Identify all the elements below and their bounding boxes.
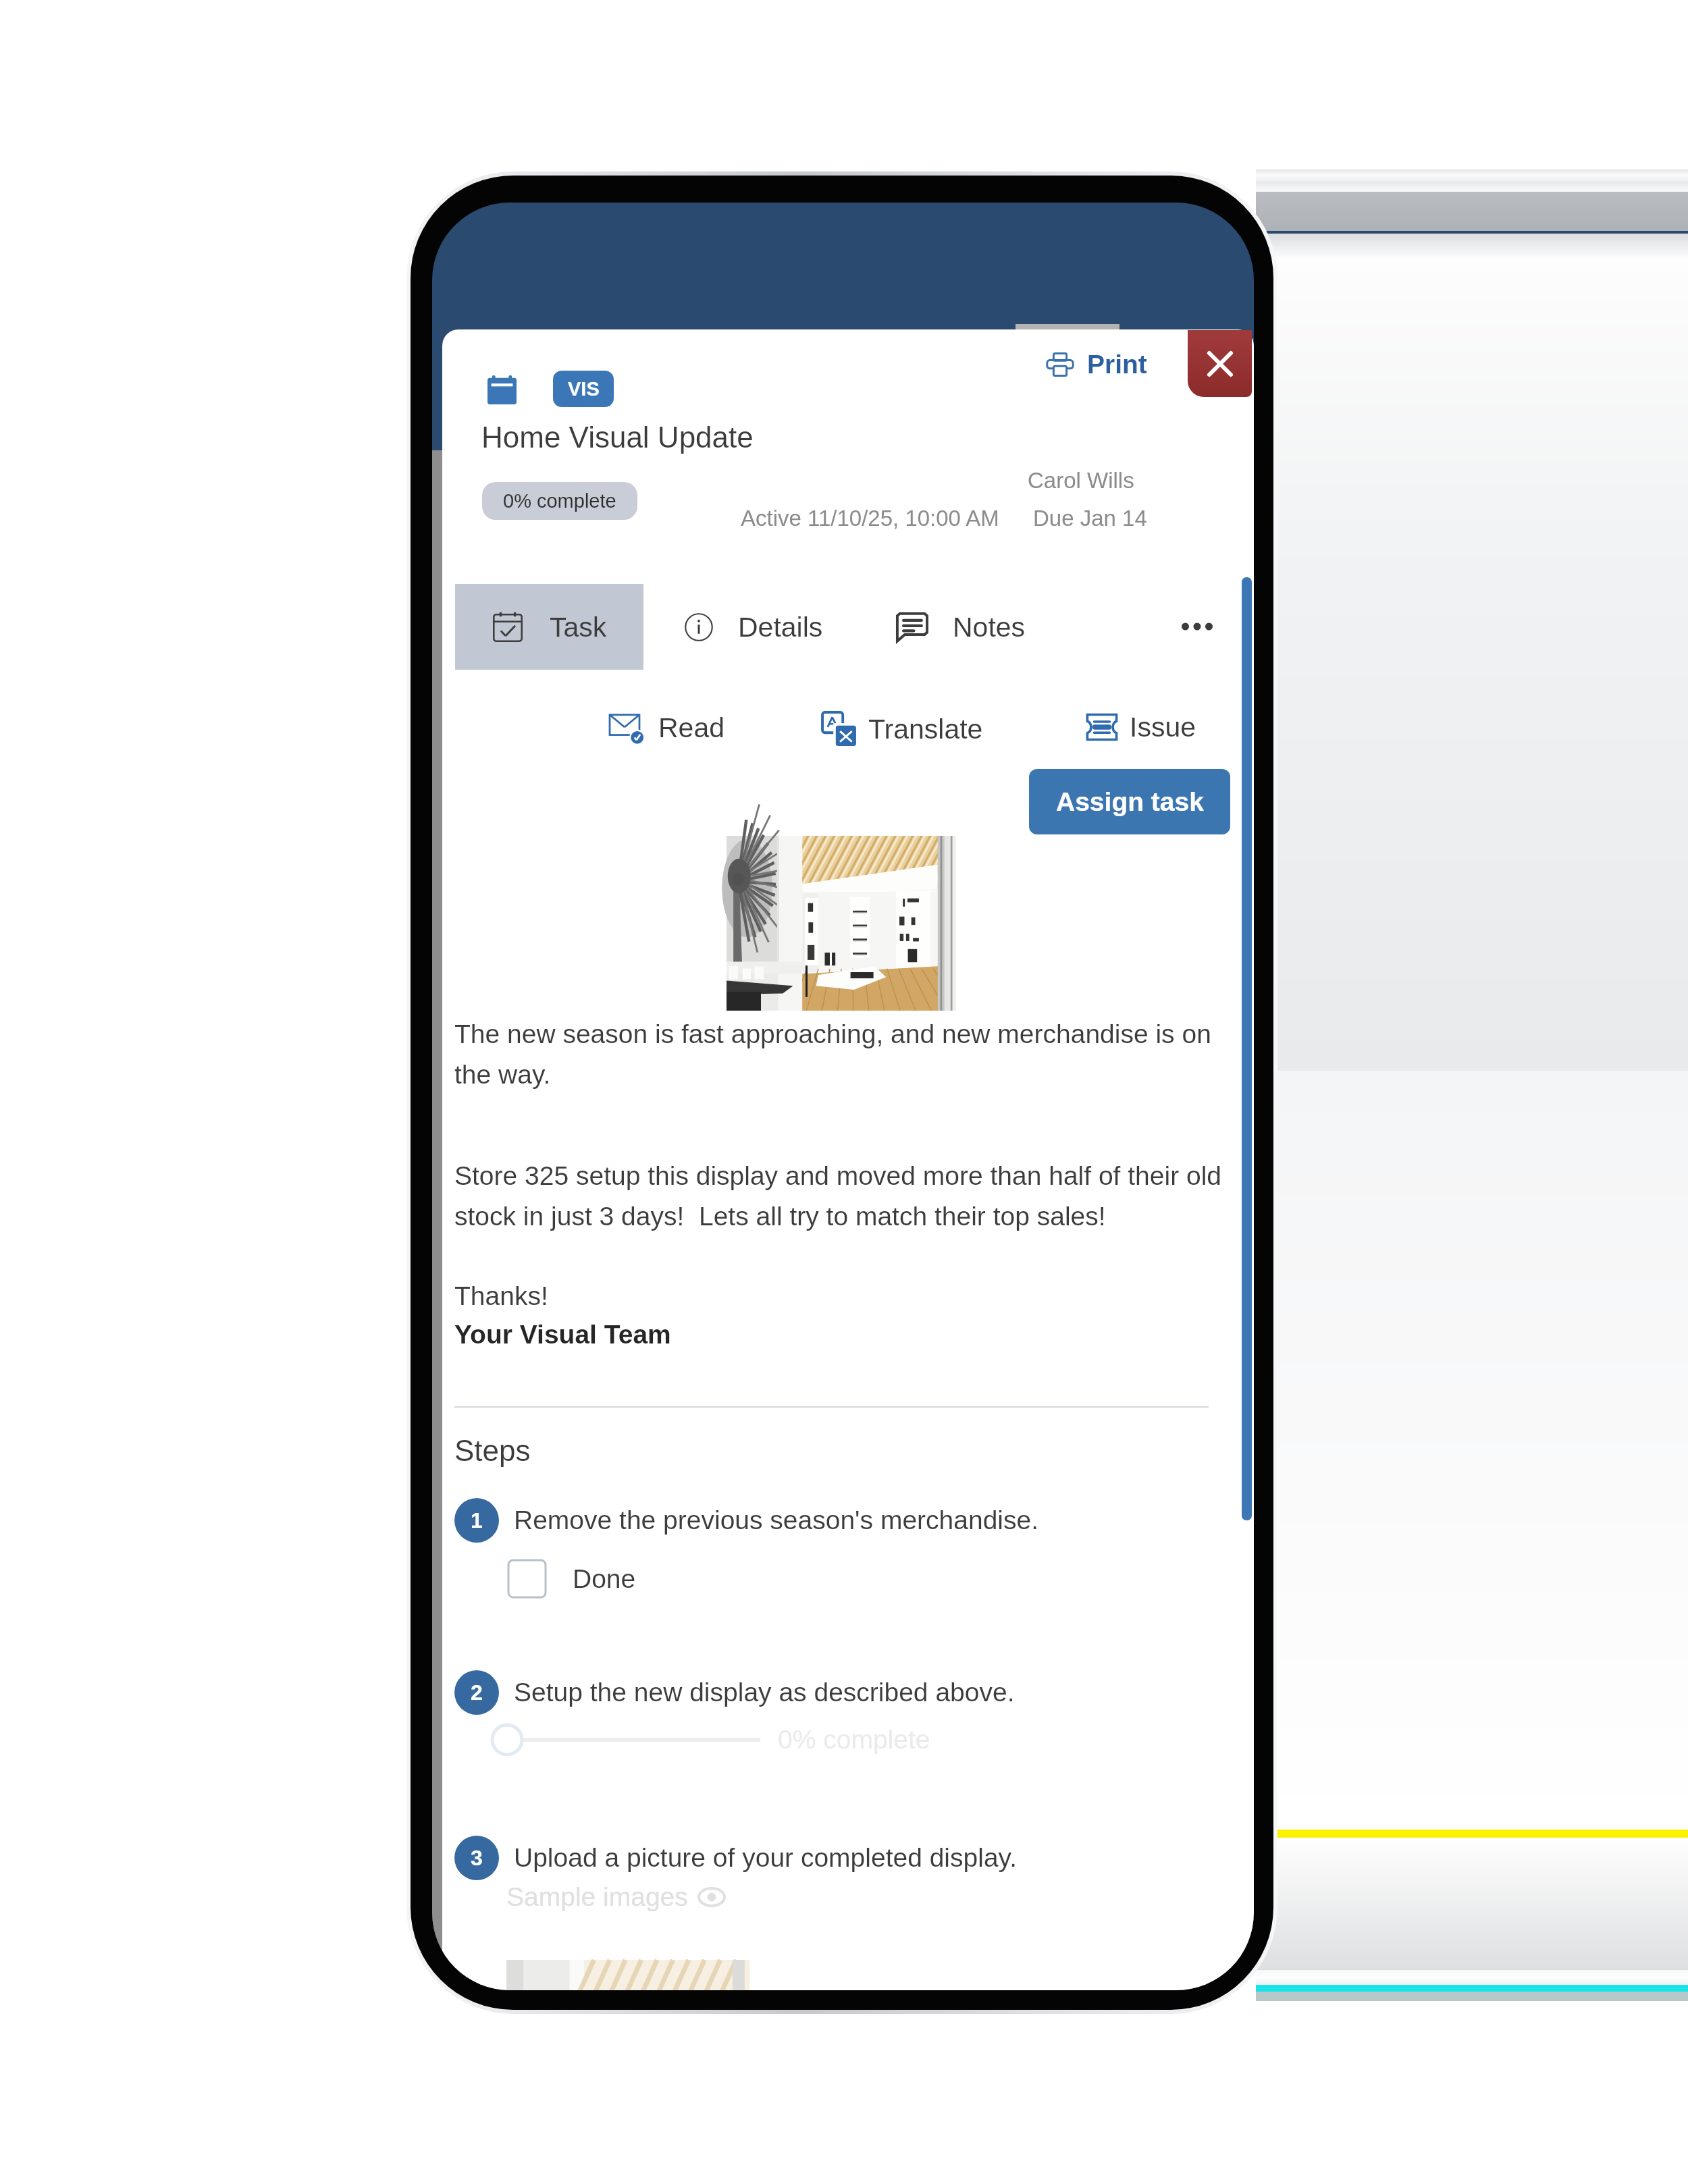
button[interactable]: 1 (454, 1498, 1039, 1543)
button[interactable]: VIS (553, 371, 614, 407)
staticText: Home Visual Update (481, 421, 754, 454)
staticText: Print (1087, 350, 1147, 379)
staticText: Your Visual Team (454, 1320, 671, 1350)
staticText: Issue (1130, 712, 1196, 743)
button[interactable]: Notes (887, 584, 1035, 670)
staticText: Sample images (506, 1882, 688, 1912)
staticText: 2 (471, 1680, 483, 1705)
button[interactable]: More options (1167, 600, 1228, 654)
staticText: Remove the previous season's merchandise… (514, 1506, 1039, 1535)
staticText: Details (738, 612, 823, 643)
staticText: 3 (471, 1846, 483, 1870)
button[interactable]: 2 (454, 1670, 1015, 1715)
staticText: The new season is fast approaching, and … (454, 1019, 1211, 1089)
staticText: Upload a picture of your completed displ… (514, 1843, 1018, 1873)
staticText: Store 325 setup this display and moved m… (454, 1161, 1222, 1231)
button[interactable]: Task (455, 584, 643, 670)
button[interactable]: Done (507, 1559, 637, 1599)
staticText: VIS (568, 378, 600, 400)
staticText: Carol Wills (1028, 468, 1134, 493)
button[interactable]: Read (607, 709, 728, 747)
button[interactable]: Print (1041, 344, 1153, 385)
staticText: Read (658, 712, 725, 743)
staticText: Setup the new display as described above… (514, 1678, 1015, 1707)
staticText: Active 11/10/25, 10:00 AM (741, 506, 999, 531)
button[interactable]: 3 (454, 1836, 1018, 1880)
button[interactable]: Translate (819, 709, 986, 749)
button[interactable]: Issue (1083, 709, 1198, 745)
staticText: 1 (471, 1508, 483, 1533)
staticText: Notes (953, 612, 1026, 643)
staticText: Done (573, 1564, 636, 1594)
button[interactable]: Assign task (1029, 769, 1230, 834)
staticText: Translate (868, 714, 983, 745)
staticText: 0% complete (778, 1725, 930, 1755)
staticText: 0% complete (503, 490, 616, 512)
staticText: Assign task (1056, 787, 1204, 817)
staticText: Due Jan 14 (1033, 506, 1147, 531)
button[interactable]: Details (675, 584, 833, 670)
staticText: Steps (454, 1434, 531, 1467)
button[interactable]: Close (1188, 330, 1252, 397)
staticText: Thanks! (454, 1281, 548, 1311)
button[interactable]: Sample images (506, 1882, 724, 1912)
staticText: Task (550, 612, 607, 643)
